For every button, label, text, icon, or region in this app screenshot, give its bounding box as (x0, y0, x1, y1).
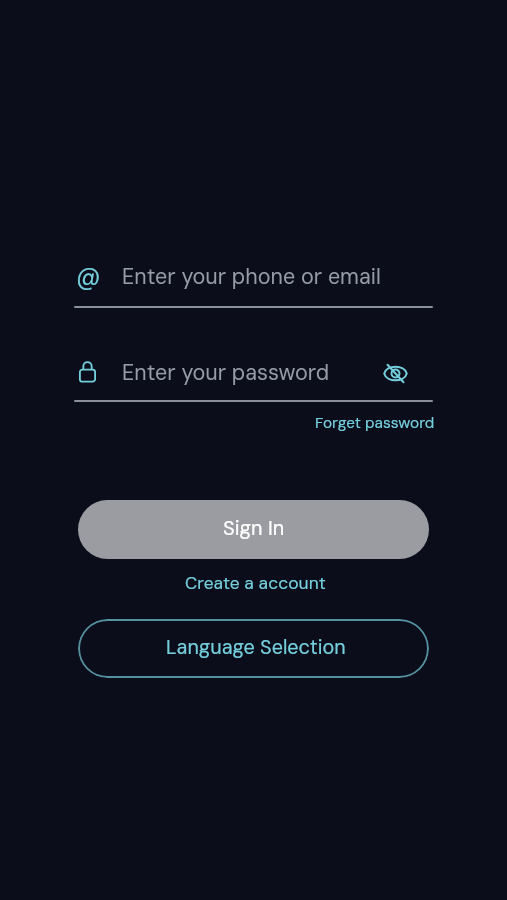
button[interactable]: Show password (379, 354, 411, 386)
button[interactable]: Enter your password (74, 352, 433, 402)
staticText: @ (76, 260, 101, 293)
staticText: Enter your phone or email (122, 263, 381, 291)
staticText: Language Selection (166, 634, 346, 660)
staticText: Enter your password (122, 359, 330, 387)
button[interactable]: Language Selection (78, 619, 429, 678)
button[interactable]: Create a account (175, 571, 336, 595)
button[interactable]: @ (74, 258, 433, 308)
staticText: Sign In (223, 515, 285, 541)
button[interactable]: Forget password (308, 411, 441, 435)
staticText: Create a account (185, 572, 326, 595)
button[interactable]: Sign In (78, 500, 429, 559)
staticText: Forget password (315, 413, 435, 433)
